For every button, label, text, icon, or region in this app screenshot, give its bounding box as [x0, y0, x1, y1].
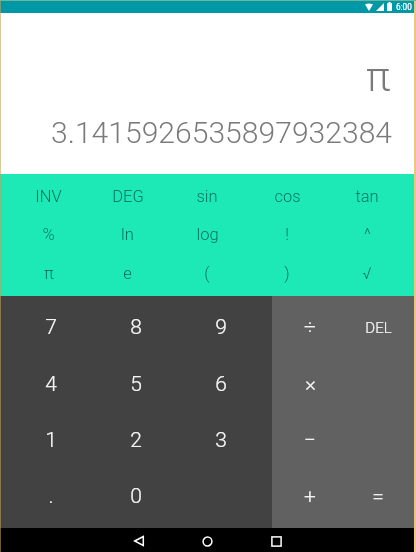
staticText: − — [304, 428, 316, 453]
staticText: + — [304, 484, 316, 509]
button[interactable]: + — [276, 468, 344, 524]
button[interactable]: log — [167, 215, 247, 254]
staticText: cos — [274, 187, 301, 206]
staticText: % — [42, 225, 55, 244]
staticText: 3.1415926535897932384 — [51, 115, 393, 150]
staticText: . — [48, 484, 54, 509]
button[interactable]: = — [344, 468, 412, 524]
button[interactable]: 4 — [9, 356, 93, 412]
staticText: 1 — [45, 428, 57, 453]
button[interactable]: ) — [247, 254, 327, 293]
button[interactable]: 1 — [9, 412, 93, 468]
button[interactable]: Recents — [242, 528, 311, 552]
staticText: ) — [284, 264, 290, 283]
staticText: 8 — [130, 315, 142, 340]
button[interactable]: 8 — [93, 299, 178, 356]
button[interactable]: × — [276, 356, 344, 412]
button[interactable]: 5 — [93, 356, 178, 412]
staticText: e — [123, 264, 132, 283]
button[interactable]: ^ — [327, 215, 407, 254]
staticText: 2 — [130, 428, 142, 453]
staticText: × — [305, 372, 316, 397]
button[interactable]: 7 — [9, 299, 93, 356]
staticText: ln — [121, 225, 134, 244]
staticText: ! — [285, 225, 289, 244]
staticText: 6 — [215, 372, 227, 397]
button[interactable]: 0 — [93, 468, 178, 524]
button[interactable]: ÷ — [276, 299, 344, 356]
button[interactable]: % — [9, 215, 88, 254]
button[interactable]: ( — [167, 254, 247, 293]
staticText: √ — [362, 264, 372, 283]
staticText: 0 — [130, 484, 142, 509]
staticText: π — [366, 53, 391, 101]
staticText: tan — [355, 187, 379, 206]
staticText: 6:00 — [396, 2, 412, 12]
button[interactable]: √ — [327, 254, 407, 293]
button[interactable]: tan — [327, 177, 407, 215]
button[interactable]: − — [276, 412, 344, 468]
button[interactable]: sin — [167, 177, 247, 215]
staticText: 3 — [215, 428, 227, 453]
button[interactable]: π — [9, 254, 88, 293]
staticText: = — [372, 484, 384, 509]
button[interactable]: DEL — [344, 299, 412, 356]
button[interactable]: INV — [9, 177, 88, 215]
button[interactable]: e — [88, 254, 167, 293]
staticText: DEG — [112, 187, 144, 206]
button[interactable]: cos — [247, 177, 327, 215]
staticText: 5 — [130, 372, 142, 397]
button[interactable]: 2 — [93, 412, 178, 468]
button[interactable]: 3 — [178, 412, 263, 468]
button[interactable]: Back — [104, 528, 173, 552]
button[interactable]: 9 — [178, 299, 263, 356]
staticText: sin — [196, 187, 218, 206]
button[interactable]: . — [9, 468, 93, 524]
staticText: 9 — [215, 315, 227, 340]
staticText: 4 — [45, 372, 57, 397]
staticText: log — [196, 225, 219, 244]
staticText: DEL — [365, 319, 392, 337]
staticText: INV — [35, 187, 62, 206]
button[interactable]: DEG — [88, 177, 167, 215]
button[interactable]: ln — [88, 215, 167, 254]
button[interactable]: Home — [173, 528, 242, 552]
staticText: ( — [204, 264, 210, 283]
staticText: ÷ — [304, 315, 316, 340]
button[interactable]: 6 — [178, 356, 263, 412]
button[interactable]: ! — [247, 215, 327, 254]
staticText: π — [44, 264, 54, 283]
staticText: 7 — [45, 315, 57, 340]
staticText: ^ — [364, 225, 371, 244]
